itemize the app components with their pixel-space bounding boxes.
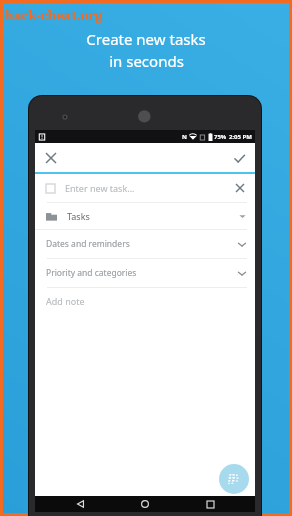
button[interactable]: Back — [60, 496, 100, 512]
staticText: 75% — [214, 133, 227, 141]
staticText: Tasks — [67, 210, 239, 222]
staticText: Create new tasks — [86, 29, 206, 49]
staticText: N — [182, 133, 187, 141]
button[interactable]: Home — [125, 496, 165, 512]
button[interactable]: Save task — [228, 147, 250, 169]
button[interactable]: Dates and reminders — [35, 230, 255, 258]
staticText: Priority and categories — [46, 267, 238, 279]
staticText: Enter new task... — [65, 182, 233, 194]
staticText: Dates and reminders — [46, 238, 238, 250]
button[interactable]: Close — [40, 147, 62, 169]
button[interactable]: Tasks — [35, 203, 255, 229]
staticText: Add note — [46, 295, 85, 307]
staticText: hack-cheat.org — [5, 6, 103, 24]
staticText: in seconds — [109, 51, 184, 71]
button[interactable]: Priority and categories — [35, 259, 255, 287]
button[interactable]: Recent apps — [190, 496, 230, 512]
staticText: 2:05 PM — [229, 133, 252, 141]
button[interactable]: Enter new task... — [35, 174, 255, 202]
button[interactable]: BlackBerry Hub — [219, 464, 249, 494]
button[interactable]: Clear text — [233, 181, 247, 195]
button[interactable]: Add note — [35, 288, 255, 314]
